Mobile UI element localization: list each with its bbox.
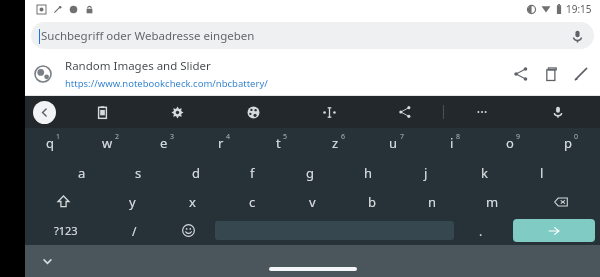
button[interactable]: y [102,187,162,216]
button[interactable]: v [282,187,342,216]
button[interactable]: o [484,128,542,158]
button[interactable]: c [222,187,282,216]
button[interactable]: Random Images and Slider [25,53,600,95]
staticText: q [46,134,54,152]
button[interactable]: a [53,158,110,187]
staticText: o [506,134,514,152]
staticText: u [389,134,398,152]
button[interactable]: i [426,128,484,158]
staticText: 8 [456,132,461,142]
button[interactable]: u [368,128,426,158]
button[interactable]: Hide keyboard [37,251,57,271]
staticText: 1 [56,132,61,142]
staticText: d [192,164,200,182]
button[interactable]: z [310,128,368,158]
staticText: x [189,193,196,211]
button[interactable]: n [402,187,462,216]
button[interactable]: Share [506,59,536,89]
button[interactable]: d [167,158,224,187]
button[interactable]: Backspace [522,187,600,216]
button[interactable]: Settings [140,96,215,128]
staticText: h [364,164,373,182]
staticText: a [78,164,86,182]
staticText: y [129,193,136,211]
staticText: k [481,164,488,182]
staticText: . [479,223,483,239]
staticText: 2 [115,132,120,142]
staticText: Suchbegriff oder Webadresse eingeben [41,28,255,44]
staticText: 4 [226,132,231,142]
button[interactable]: Back [33,101,56,124]
button[interactable]: Clipboard [65,96,140,128]
button[interactable]: e [139,128,196,158]
button[interactable]: Voice input [520,96,596,128]
button[interactable]: Suchbegriff oder Webadresse eingeben [31,22,594,49]
staticText: j [424,164,428,182]
staticText: w [102,134,113,152]
staticText: m [486,193,499,211]
staticText: v [309,193,316,211]
button[interactable]: m [462,187,522,216]
staticText: 6 [341,132,346,142]
staticText: 5 [283,132,288,142]
staticText: g [306,164,314,182]
button[interactable]: j [397,158,455,187]
staticText: f [250,164,255,182]
staticText: 0 [574,132,579,142]
button[interactable]: f [224,158,281,187]
button[interactable]: / [107,216,161,245]
staticText: l [540,164,544,182]
staticText: z [332,134,339,152]
staticText: i [450,134,454,152]
button[interactable]: q [25,128,82,158]
button[interactable]: Copy [536,59,566,89]
button[interactable]: g [281,158,339,187]
button[interactable]: . [454,216,508,245]
button[interactable]: Voice search [566,25,588,47]
staticText: 19:15 [566,2,592,16]
staticText: e [160,134,168,152]
staticText: Random Images and Slider [65,58,211,74]
staticText: https://www.notebookcheck.com/nbcbattery… [65,77,268,90]
button[interactable]: Share [367,96,443,128]
button[interactable]: Edit [566,59,596,89]
button[interactable]: k [455,158,513,187]
staticText: t [276,134,281,152]
staticText: r [218,134,224,152]
button[interactable]: Text editing [291,96,367,128]
staticText: 9 [516,132,521,142]
staticText: b [368,193,376,211]
staticText: c [249,193,256,211]
button[interactable]: r [196,128,253,158]
button[interactable]: More options [444,96,520,128]
staticText: 7 [400,132,405,142]
button[interactable]: x [162,187,222,216]
button[interactable]: Emoji [161,216,215,245]
button[interactable]: l [513,158,571,187]
button[interactable]: h [339,158,397,187]
staticText: ?123 [54,223,78,238]
button[interactable]: b [342,187,402,216]
button[interactable]: t [253,128,310,158]
button[interactable]: Go [513,219,595,242]
button[interactable]: p [542,128,600,158]
button[interactable]: ?123 [25,216,107,245]
staticText: / [132,223,137,239]
staticText: 3 [170,132,175,142]
button[interactable]: w [82,128,139,158]
staticText: s [135,164,142,182]
button[interactable]: Themes [215,96,291,128]
staticText: n [428,193,437,211]
staticText: p [564,134,572,152]
button[interactable]: Shift [25,187,102,216]
button[interactable]: s [110,158,167,187]
